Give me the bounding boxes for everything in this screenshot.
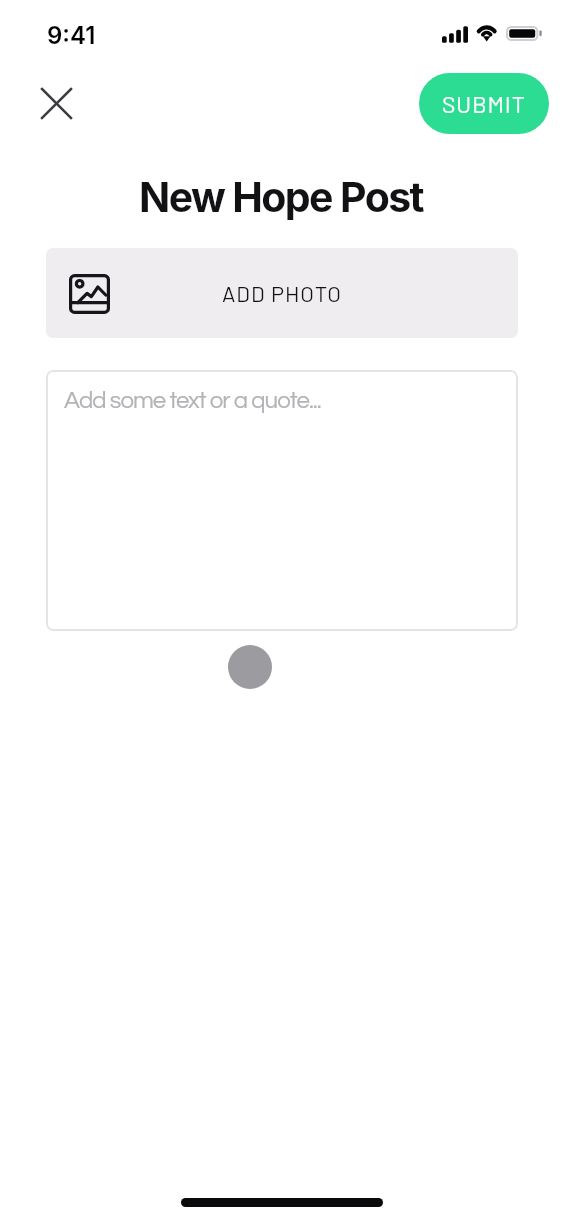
button[interactable]: ADD PHOTO <box>46 248 518 338</box>
staticText: SUBMIT <box>442 90 526 118</box>
button[interactable]: Add some text or a quote... <box>46 370 518 631</box>
button[interactable]: Close <box>32 79 81 128</box>
button[interactable]: SUBMIT <box>419 73 549 134</box>
staticText: New Hope Post <box>0 172 563 222</box>
staticText: ADD PHOTO <box>222 280 342 306</box>
staticText: 9:41 <box>47 21 96 50</box>
staticText: Add some text or a quote... <box>64 388 321 413</box>
button[interactable]: Profile avatar <box>228 645 272 689</box>
